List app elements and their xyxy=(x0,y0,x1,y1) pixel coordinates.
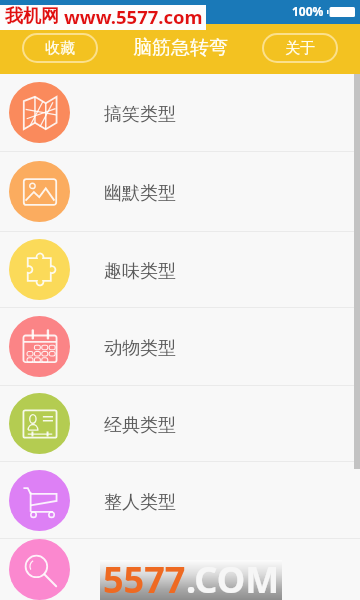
staticText: www.5577.com xyxy=(64,4,203,29)
button[interactable]: 动物类型 xyxy=(0,308,360,385)
staticText: 100% xyxy=(292,3,324,19)
staticText: 关于 xyxy=(285,39,315,58)
staticText: 收藏 xyxy=(45,39,75,58)
button[interactable]: 搞笑类型 xyxy=(0,74,360,151)
staticText: 整人类型 xyxy=(104,491,176,514)
staticText: 动物类型 xyxy=(104,337,176,360)
button[interactable]: 收藏 xyxy=(22,33,98,63)
button[interactable]: 猜谜类型 xyxy=(0,539,360,600)
staticText: 经典类型 xyxy=(104,414,176,437)
staticText: 5577 xyxy=(103,555,186,595)
button[interactable]: 趣味类型 xyxy=(0,232,360,307)
button[interactable]: 经典类型 xyxy=(0,386,360,461)
staticText: 趣味类型 xyxy=(104,260,176,283)
staticText: .COM xyxy=(186,555,280,595)
staticText: 搞笑类型 xyxy=(104,103,176,126)
staticText: 我机网 xyxy=(5,5,59,28)
staticText: 脑筋急转弯 xyxy=(133,36,228,60)
staticText: 幽默类型 xyxy=(104,182,176,205)
button[interactable]: 幽默类型 xyxy=(0,152,360,231)
button[interactable]: 整人类型 xyxy=(0,462,360,538)
staticText: 猜谜类型 xyxy=(104,560,176,583)
button[interactable]: 关于 xyxy=(262,33,338,63)
